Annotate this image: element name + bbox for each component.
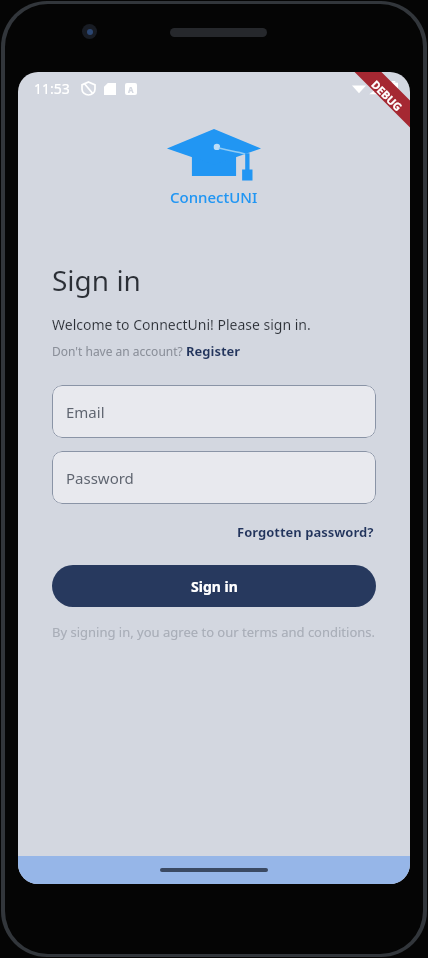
staticText: ConnectUNI xyxy=(170,187,258,207)
staticText: Sign in xyxy=(191,577,238,596)
button[interactable]: Password xyxy=(52,451,376,504)
staticText: Register xyxy=(186,342,241,360)
button[interactable]: Sign in xyxy=(52,565,376,607)
staticText: Sign in xyxy=(52,261,141,299)
staticText: Don't have an account? xyxy=(52,343,186,359)
staticText: A xyxy=(128,84,134,95)
staticText: 11:53 xyxy=(34,79,70,98)
staticText: Forgotten password? xyxy=(237,523,374,541)
staticText: Email xyxy=(66,402,105,422)
other: Home gesture bar xyxy=(160,868,268,872)
staticText: Welcome to ConnectUni! Please sign in. xyxy=(52,315,311,334)
staticText: By signing in, you agree to our terms an… xyxy=(52,623,376,641)
staticText: DEBUG xyxy=(368,77,406,114)
button[interactable]: Email xyxy=(52,385,376,438)
button[interactable]: Forgotten password? xyxy=(235,521,376,543)
button[interactable]: Register xyxy=(186,342,241,360)
staticText: Password xyxy=(66,468,134,488)
